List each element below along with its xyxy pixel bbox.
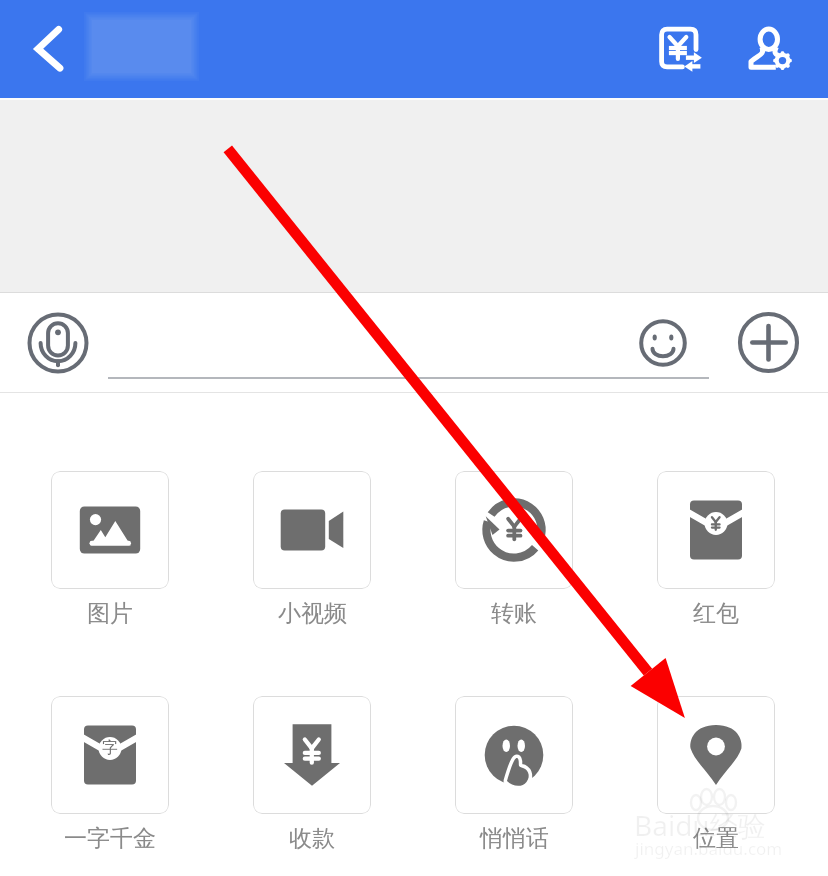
button[interactable]: 字 (51, 696, 169, 853)
staticText: 小视频 (278, 599, 347, 628)
button[interactable]: 小视频 (253, 471, 371, 628)
staticText: 位置 (693, 824, 739, 853)
staticText: Baidu经验 (634, 806, 766, 844)
button[interactable]: Contact settings (735, 13, 805, 83)
staticText: 收款 (289, 824, 335, 853)
button[interactable]: 悄悄话 (455, 696, 573, 853)
button[interactable]: More (735, 309, 802, 376)
button[interactable]: Voice message (24, 309, 92, 377)
button[interactable]: Back (24, 18, 86, 80)
staticText: 悄悄话 (480, 824, 549, 853)
staticText: 红包 (693, 599, 739, 628)
button[interactable]: 红包 (657, 471, 775, 628)
staticText: jingyan.baidu.com (635, 837, 783, 860)
button[interactable]: 收款 (253, 696, 371, 853)
button[interactable]: 图片 (51, 471, 169, 628)
button[interactable]: Emoji (637, 317, 689, 369)
staticText: 一字千金 (64, 824, 156, 853)
button[interactable]: 位置 (657, 696, 775, 853)
staticText: 字 (102, 738, 118, 758)
staticText: 转账 (491, 599, 537, 628)
staticText: 图片 (87, 599, 133, 628)
button[interactable]: Transfer (645, 14, 715, 84)
button[interactable]: 转账 (455, 471, 573, 628)
